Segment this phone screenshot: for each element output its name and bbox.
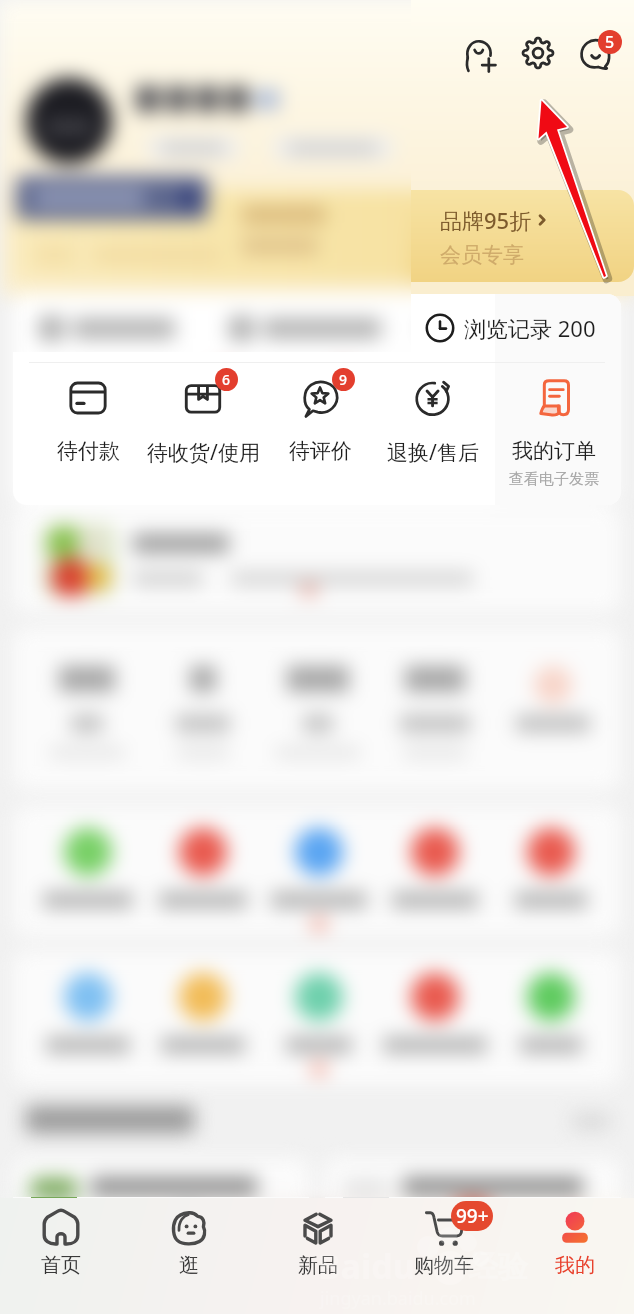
button[interactable] (373, 628, 497, 790)
button[interactable] (146, 136, 240, 160)
button[interactable]: 浏览记录 200 (395, 294, 621, 362)
button[interactable] (489, 951, 613, 1085)
button[interactable] (141, 951, 265, 1085)
button[interactable] (26, 78, 112, 164)
button[interactable]: Settings (515, 30, 561, 76)
button[interactable]: Messages (573, 31, 619, 77)
button[interactable] (489, 951, 613, 1085)
button[interactable] (141, 628, 265, 790)
button[interactable]: Messages (573, 31, 619, 77)
button[interactable] (13, 1158, 309, 1244)
button[interactable]: Add friend (457, 32, 503, 78)
button[interactable] (146, 136, 240, 160)
button[interactable] (146, 136, 240, 160)
button[interactable] (13, 508, 621, 612)
button[interactable] (491, 628, 615, 790)
button[interactable] (26, 951, 150, 1085)
button[interactable]: 浏览记录 200 (395, 294, 621, 362)
button[interactable]: 我的 (513, 1198, 634, 1314)
button[interactable]: 退换/售后 (371, 376, 495, 505)
button[interactable]: 浏览记录 200 (395, 294, 621, 362)
button[interactable]: 退换/售后 (371, 376, 495, 505)
button[interactable]: 逛 (127, 1198, 251, 1314)
button[interactable] (272, 136, 394, 160)
button[interactable] (489, 806, 613, 936)
button[interactable] (141, 806, 265, 936)
button[interactable]: 逛 (127, 1198, 251, 1314)
button[interactable] (489, 951, 613, 1085)
button[interactable] (256, 628, 380, 790)
button[interactable]: 品牌95折 (410, 190, 634, 282)
button[interactable] (489, 806, 613, 936)
button[interactable] (13, 1158, 309, 1244)
button[interactable]: 品牌95折 (410, 190, 634, 282)
button[interactable] (257, 806, 381, 936)
button[interactable] (373, 951, 497, 1085)
button[interactable] (325, 1158, 621, 1244)
button[interactable] (272, 136, 394, 160)
button[interactable] (13, 1158, 309, 1244)
button[interactable] (25, 628, 149, 790)
button[interactable] (25, 628, 149, 790)
button[interactable] (25, 628, 149, 790)
button[interactable] (256, 628, 380, 790)
button[interactable] (257, 951, 381, 1085)
button[interactable] (256, 628, 380, 790)
button[interactable] (26, 78, 112, 164)
button[interactable] (373, 628, 497, 790)
button[interactable]: 我的订单 (492, 376, 616, 505)
button[interactable]: 待付款 (26, 376, 150, 505)
button[interactable] (257, 951, 381, 1085)
button[interactable]: Add friend (457, 32, 503, 78)
button[interactable] (16, 176, 208, 220)
button[interactable] (373, 806, 497, 936)
button[interactable]: 首页 (0, 1198, 123, 1314)
button[interactable] (26, 806, 150, 936)
button[interactable] (141, 951, 265, 1085)
button[interactable]: Settings (515, 30, 561, 76)
button[interactable]: Messages (573, 31, 619, 77)
button[interactable]: 待付款 (26, 376, 150, 505)
button[interactable]: 99+ (382, 1198, 506, 1314)
button[interactable]: Settings (515, 30, 561, 76)
button[interactable]: 我的 (513, 1198, 634, 1314)
button[interactable]: 9 (258, 376, 382, 505)
button[interactable] (141, 806, 265, 936)
button[interactable]: 首页 (0, 1198, 123, 1314)
button[interactable]: 6 (141, 376, 265, 505)
button[interactable]: 99+ (382, 1198, 506, 1314)
button[interactable]: 9 (258, 376, 382, 505)
button[interactable] (26, 951, 150, 1085)
button[interactable] (13, 508, 621, 612)
button[interactable] (16, 176, 208, 220)
button[interactable] (373, 806, 497, 936)
button[interactable] (141, 806, 265, 936)
button[interactable] (26, 78, 112, 164)
button[interactable] (26, 806, 150, 936)
button[interactable]: 99+ (382, 1198, 506, 1314)
button[interactable]: 首页 (0, 1198, 123, 1314)
button[interactable] (373, 806, 497, 936)
button[interactable]: 9 (258, 376, 382, 505)
button[interactable]: 6 (141, 376, 265, 505)
button[interactable] (373, 951, 497, 1085)
button[interactable]: 首页 (0, 1198, 123, 1314)
button[interactable]: 我的订单 (492, 376, 616, 505)
button[interactable] (257, 806, 381, 936)
button[interactable] (257, 951, 381, 1085)
button[interactable]: Add friend (457, 32, 503, 78)
button[interactable]: Add friend (457, 32, 503, 78)
button[interactable]: Messages (573, 31, 619, 77)
button[interactable]: 退换/售后 (371, 376, 495, 505)
button[interactable] (257, 951, 381, 1085)
button[interactable] (16, 176, 208, 220)
button[interactable] (325, 1158, 621, 1244)
button[interactable]: 品牌95折 (410, 190, 634, 282)
button[interactable]: 99+ (382, 1198, 506, 1314)
button[interactable] (26, 951, 150, 1085)
button[interactable] (141, 628, 265, 790)
